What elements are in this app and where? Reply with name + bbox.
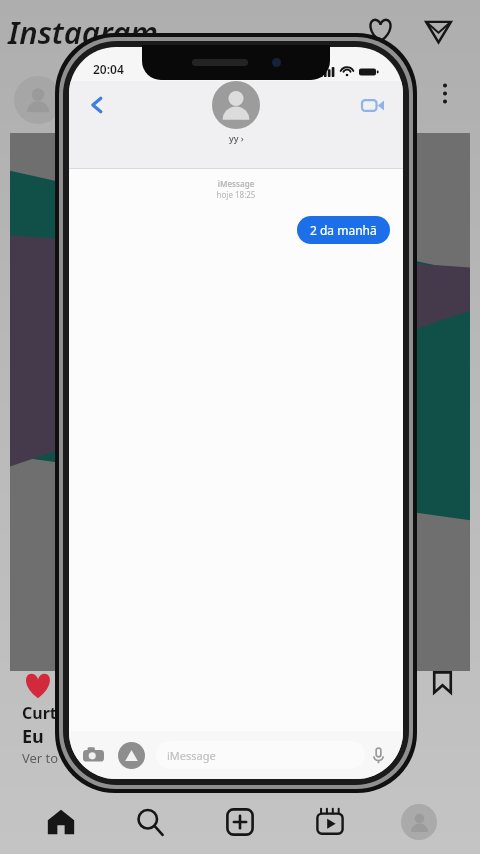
- staticText: hoje 18:25: [69, 189, 403, 200]
- button[interactable]: Back: [79, 87, 115, 123]
- button[interactable]: Dictate: [365, 742, 392, 769]
- staticText: Instagram: [8, 11, 159, 53]
- button[interactable]: Direct messages: [416, 8, 460, 52]
- button[interactable]: Create: [207, 790, 273, 854]
- button[interactable]: Reels: [297, 790, 363, 854]
- staticText: iMessage: [167, 748, 216, 763]
- button[interactable]: Video call: [355, 87, 391, 123]
- staticText: Curt: [22, 702, 57, 724]
- staticText: Ver to: [22, 749, 59, 767]
- button[interactable]: Camera: [80, 742, 107, 769]
- staticText: Eu: [22, 724, 44, 749]
- button[interactable]: Search: [117, 790, 183, 854]
- button[interactable]: Home: [28, 790, 94, 854]
- staticText: 2 da manhã: [310, 222, 377, 238]
- staticText: 20:04: [93, 61, 124, 77]
- button[interactable]: App Store: [118, 742, 145, 769]
- button[interactable]: 2 da manhã: [297, 216, 390, 244]
- button[interactable]: iMessage: [156, 741, 365, 769]
- button[interactable]: Like: [18, 666, 58, 706]
- button[interactable]: More options: [432, 80, 458, 106]
- button[interactable]: Save: [422, 662, 462, 702]
- button[interactable]: [14, 76, 62, 124]
- button[interactable]: Activity: [358, 8, 402, 52]
- staticText: yy ›: [229, 132, 244, 144]
- staticText: iMessage: [69, 178, 403, 189]
- button[interactable]: Profile: [386, 790, 452, 854]
